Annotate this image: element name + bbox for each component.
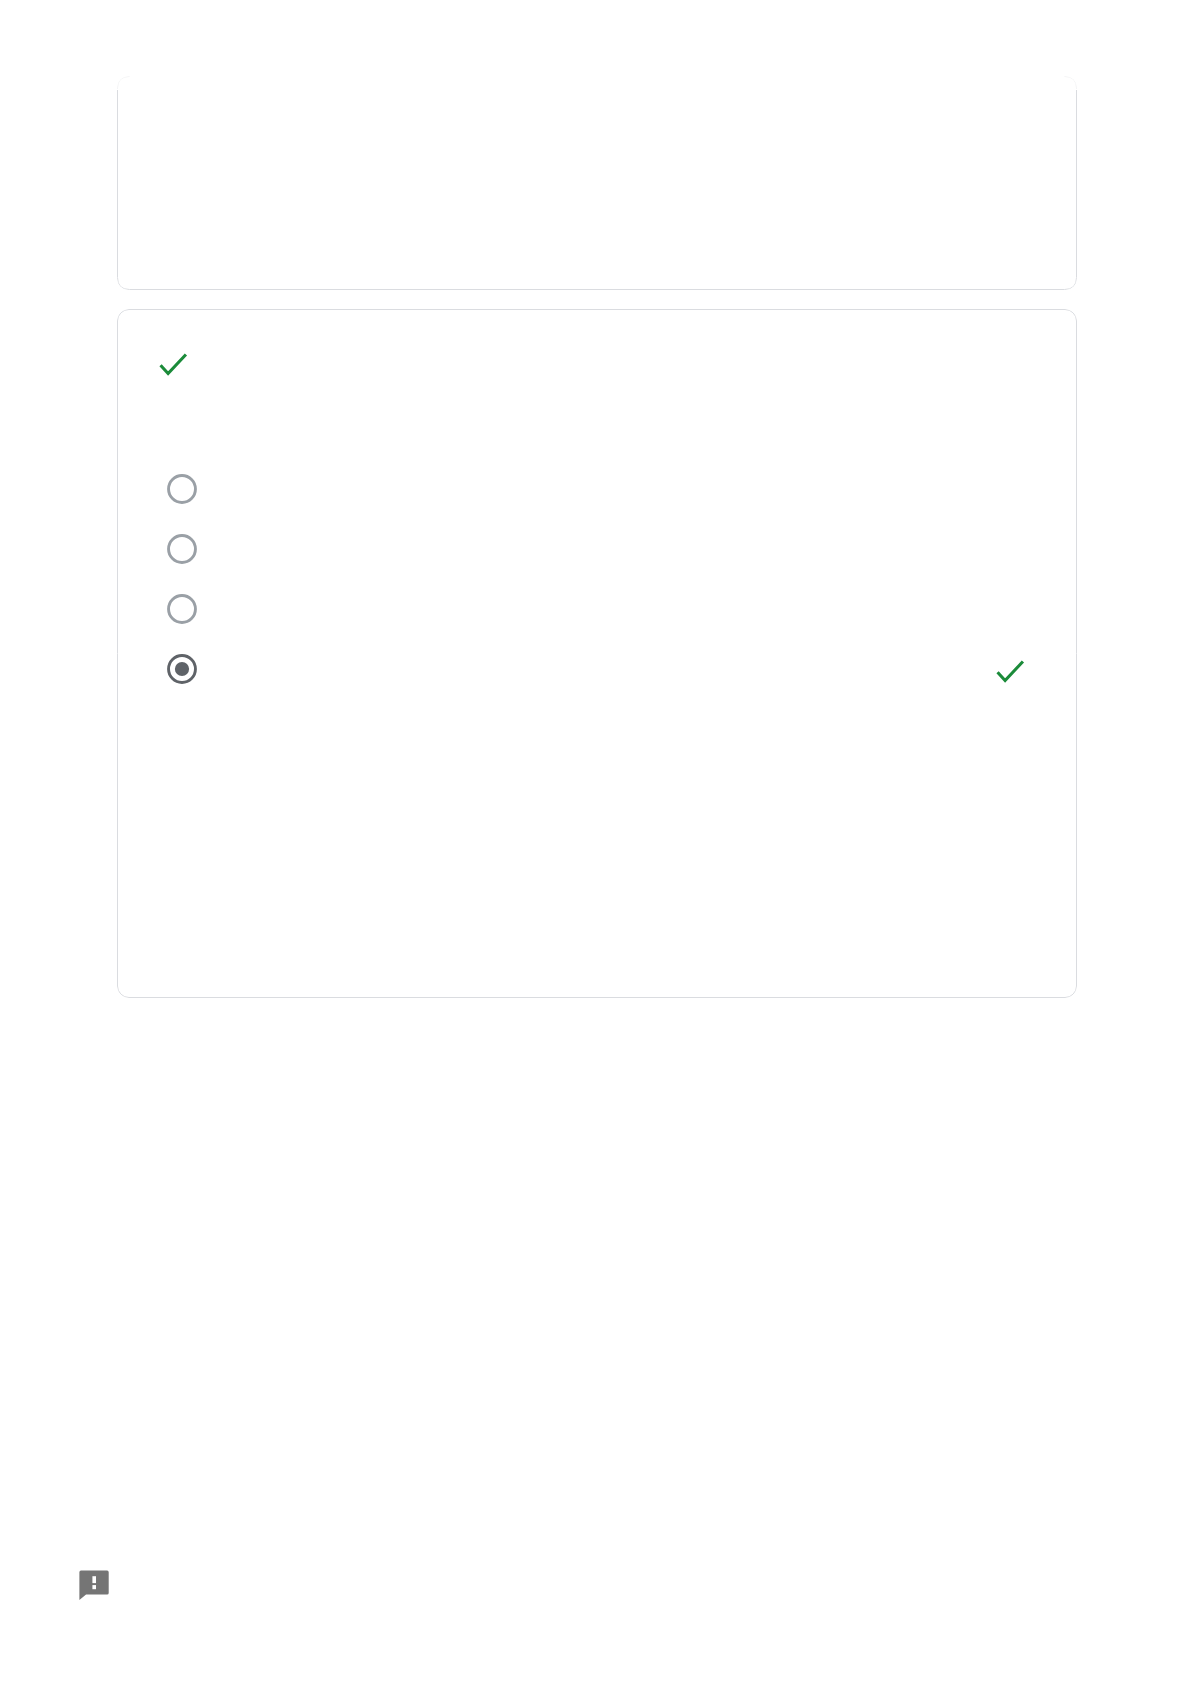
button[interactable]: Option 4, selected [162, 649, 202, 689]
button[interactable]: Option 2 [162, 529, 202, 569]
button[interactable]: Option 3 [162, 589, 202, 629]
other: Correct answer [159, 353, 187, 375]
other: Your answer is correct [996, 660, 1024, 682]
button[interactable]: Report a problem [79, 1570, 109, 1600]
button[interactable]: Option 1 [162, 469, 202, 509]
